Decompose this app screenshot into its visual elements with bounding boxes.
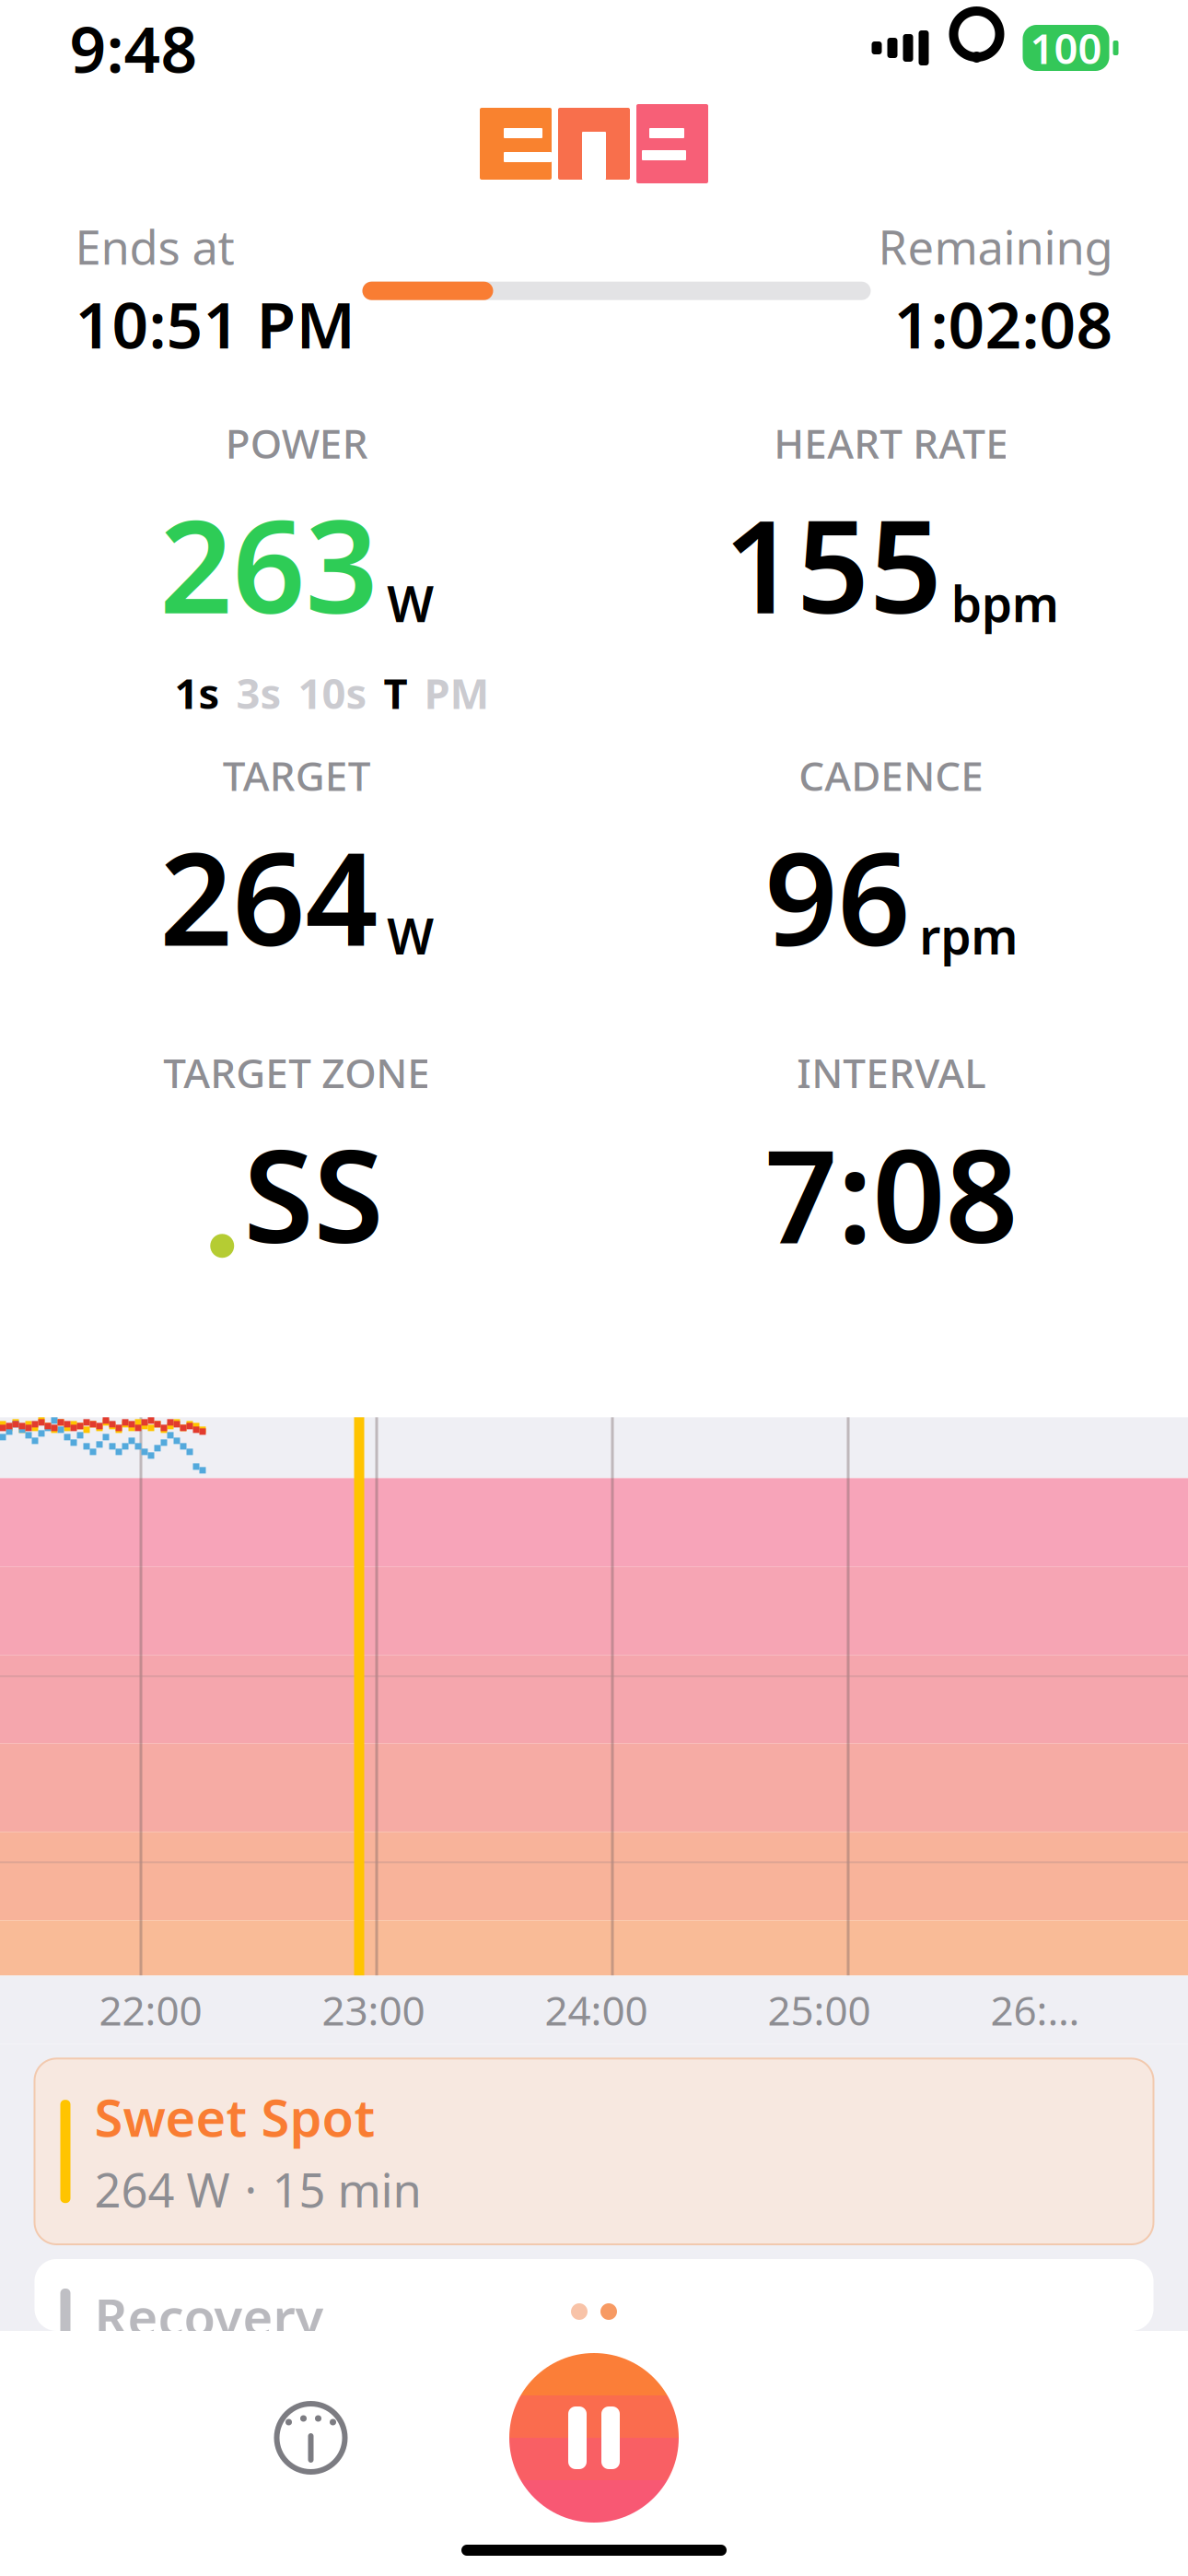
staticText: 15 min (272, 2158, 421, 2220)
staticText: 263 (160, 479, 378, 649)
staticText: 1:02:08 (894, 281, 1113, 366)
staticText: 264 (160, 811, 378, 981)
staticText: INTERVAL (797, 1045, 986, 1099)
staticText: 22:00 (99, 1983, 202, 2037)
button[interactable]: 10s (298, 665, 367, 721)
staticText: 26:… (990, 1983, 1080, 2037)
staticText: 24:00 (545, 1983, 648, 2037)
staticText: 3s (236, 665, 281, 721)
button[interactable]: T (384, 665, 408, 721)
staticText: CADENCE (799, 748, 984, 802)
staticText: Recovery (94, 2282, 324, 2350)
staticText: Ends at (75, 216, 234, 278)
button[interactable]: 1s (175, 665, 220, 721)
staticText: 100 (1030, 20, 1102, 76)
staticText: W (387, 570, 434, 636)
staticText: 10s (298, 665, 367, 721)
staticText: 1s (175, 665, 220, 721)
staticText: 7:08 (765, 1108, 1018, 1278)
staticText: 9:48 (70, 6, 198, 90)
staticText: 23:00 (322, 1983, 425, 2037)
staticText: TARGET ZONE (163, 1045, 430, 1099)
button[interactable]: Pause workout (509, 2353, 679, 2523)
button[interactable]: Sweet Spot (35, 2058, 1153, 2244)
staticText: T (384, 665, 408, 721)
staticText: POWER (225, 416, 368, 470)
staticText: · (245, 2158, 257, 2220)
button[interactable]: PM (424, 665, 489, 721)
staticText: SS (243, 1108, 383, 1278)
button[interactable]: Metrics (263, 2390, 359, 2486)
staticText: Remaining (878, 216, 1113, 278)
staticText: 264 W (94, 2158, 230, 2220)
staticText: 10:51 PM (75, 281, 355, 366)
staticText: TARGET (223, 748, 371, 802)
button[interactable]: 3s (236, 665, 281, 721)
staticText: rpm (919, 903, 1018, 968)
staticText: bpm (951, 570, 1059, 636)
staticText: HEART RATE (774, 416, 1009, 470)
staticText: Sweet Spot (94, 2082, 375, 2151)
staticText: 155 (724, 479, 942, 649)
staticText: PM (424, 665, 489, 721)
staticText: 25:00 (768, 1983, 871, 2037)
staticText: W (387, 903, 434, 968)
staticText: 96 (765, 811, 910, 981)
